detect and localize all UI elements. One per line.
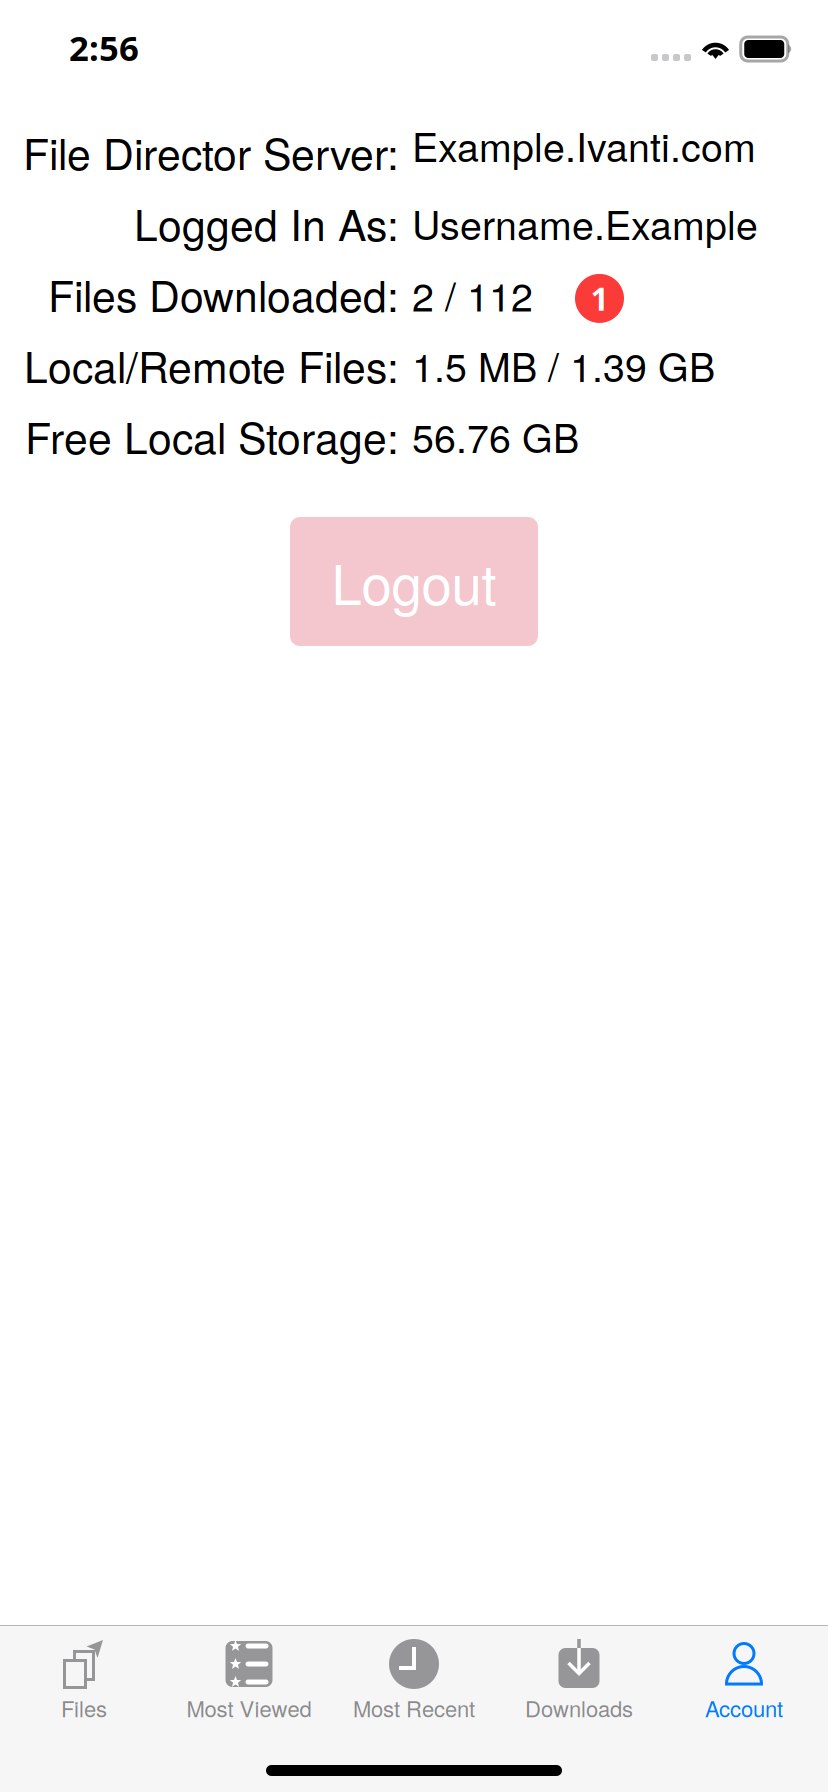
- button[interactable]: Logout: [290, 517, 538, 646]
- staticText: Example.Ivanti.com: [412, 117, 756, 173]
- staticText: 1: [590, 277, 608, 320]
- staticText: Files Downloaded:: [48, 263, 399, 324]
- button[interactable]: Files: [1, 1626, 166, 1725]
- staticText: Most Viewed: [186, 1692, 311, 1723]
- staticText: 2 / 112: [412, 266, 533, 323]
- button[interactable]: Downloads: [496, 1626, 661, 1725]
- button[interactable]: Account: [661, 1626, 826, 1725]
- staticText: Username.Example: [412, 195, 758, 251]
- staticText: Downloads: [525, 1692, 633, 1723]
- staticText: Logout: [331, 542, 496, 621]
- button[interactable]: Most Viewed: [166, 1626, 331, 1725]
- staticText: 2:56: [69, 24, 139, 71]
- staticText: Logged In As:: [134, 192, 399, 253]
- staticText: Local/Remote Files:: [24, 334, 399, 395]
- staticText: 56.76 GB: [412, 408, 579, 464]
- staticText: Account: [705, 1692, 783, 1723]
- staticText: Files: [61, 1692, 107, 1723]
- staticText: File Director Server:: [23, 121, 399, 182]
- button[interactable]: Most Recent: [331, 1626, 496, 1725]
- staticText: 1.5 MB / 1.39 GB: [412, 337, 715, 393]
- staticText: Most Recent: [353, 1692, 475, 1723]
- staticText: Free Local Storage:: [25, 405, 399, 466]
